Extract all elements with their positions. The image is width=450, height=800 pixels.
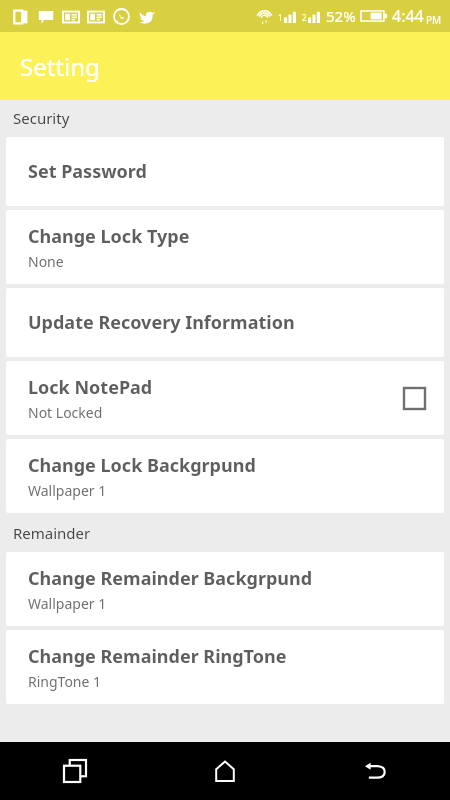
staticText: Change Remainder RingTone [28,644,287,669]
button[interactable]: Back [300,742,450,800]
staticText: Security [13,108,70,128]
button[interactable]: Lock NotePad [6,361,444,435]
staticText: 4:44 [392,5,424,27]
button[interactable]: Update Recovery Information [6,288,444,357]
staticText: Remainder [13,523,91,543]
button[interactable]: Lock NotePad toggle [402,386,426,410]
button[interactable]: Change Remainder RingTone [6,630,444,704]
staticText: Setting [20,50,100,83]
staticText: Not Locked [28,403,103,422]
button[interactable]: Set Password [6,137,444,206]
staticText: Change Lock Backgrpund [28,453,256,478]
button[interactable]: Change Remainder Backgrpund [6,552,444,626]
button[interactable]: Change Lock Type [6,210,444,284]
staticText: Wallpaper 1 [28,481,107,500]
staticText: 1 [278,12,283,23]
staticText: RingTone 1 [28,672,102,691]
button[interactable]: Recent apps [0,742,150,800]
staticText: None [28,252,64,271]
staticText: Change Lock Type [28,224,190,249]
staticText: 52% [326,6,356,26]
staticText: Update Recovery Information [28,310,295,335]
staticText: PM [426,13,442,27]
staticText: Lock NotePad [28,375,153,400]
staticText: 2 [302,12,307,23]
button[interactable]: Change Lock Backgrpund [6,439,444,513]
staticText: Wallpaper 1 [28,594,107,613]
staticText: Change Remainder Backgrpund [28,566,313,591]
staticText: Set Password [28,159,147,184]
button[interactable]: Home [150,742,300,800]
